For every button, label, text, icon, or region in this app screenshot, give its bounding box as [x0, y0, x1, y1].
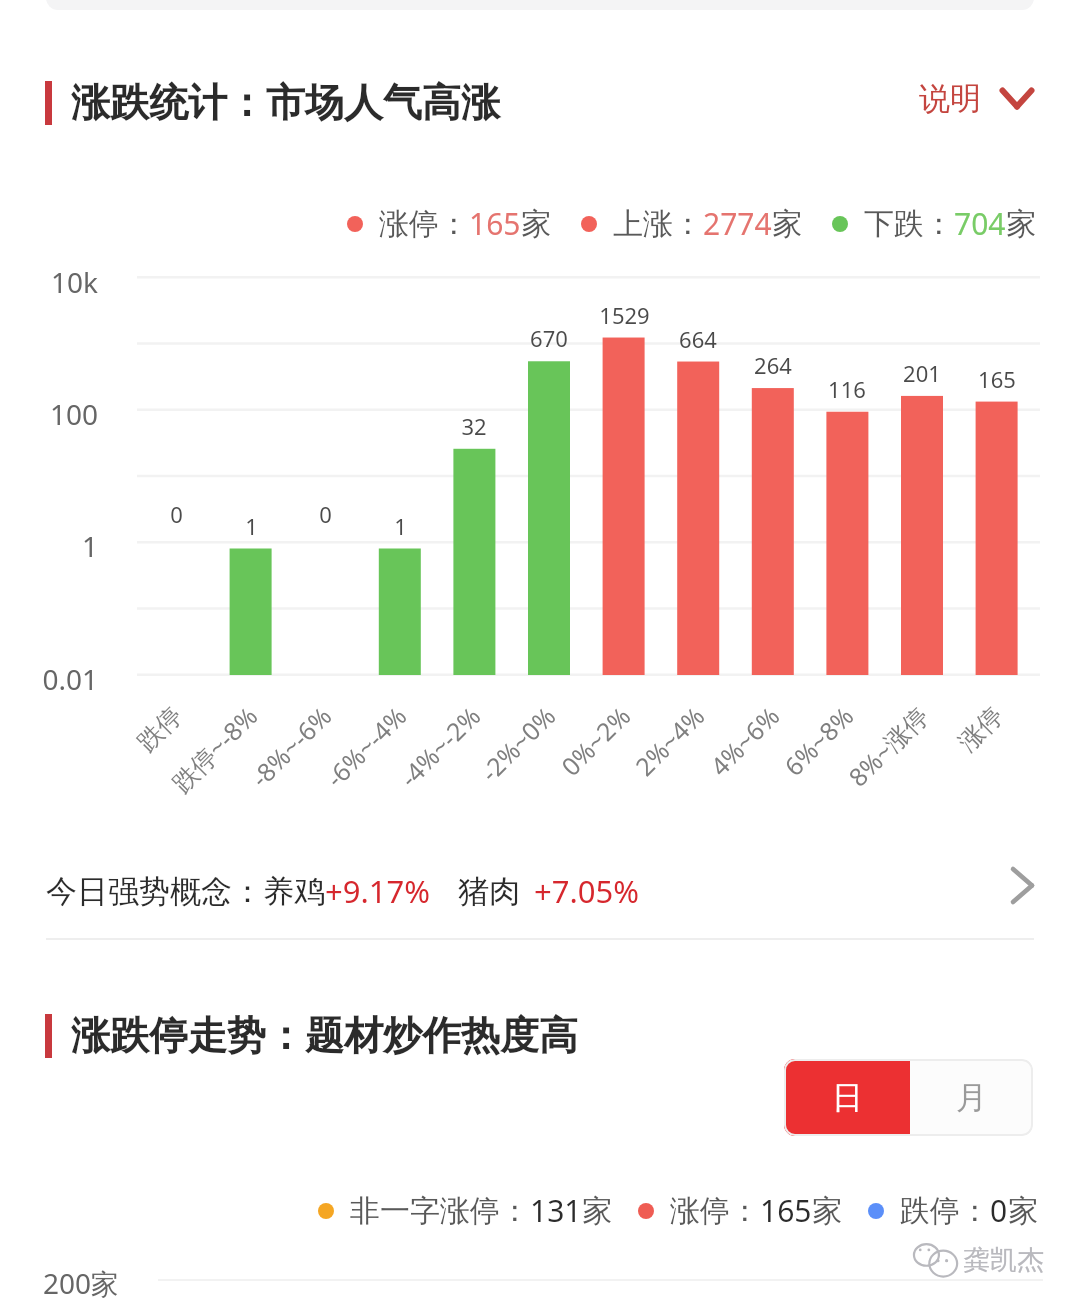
staticText: 涨停：	[670, 1192, 760, 1230]
staticText: 非一字涨停：	[350, 1192, 530, 1230]
staticText: 今日强势概念：	[46, 872, 263, 911]
staticText: 1	[245, 511, 258, 541]
button[interactable]: 日	[784, 1059, 910, 1136]
staticText: -4%~-2%	[392, 699, 487, 794]
staticText: 670	[530, 323, 568, 353]
staticText: 涨停：	[379, 205, 469, 243]
staticText: 0%~2%	[553, 699, 637, 783]
staticText: 165	[469, 203, 521, 244]
staticText: 上涨：	[613, 205, 703, 243]
staticText: 家	[812, 1192, 842, 1230]
staticText: 100	[49, 395, 98, 433]
staticText: 165	[760, 1190, 812, 1231]
button[interactable]: 上涨：	[581, 203, 802, 244]
staticText: 8%~涨停	[840, 699, 935, 794]
staticText: 涨跌停走势：题材炒作热度高	[71, 1011, 578, 1060]
staticText: 涨跌统计：市场人气高涨	[71, 78, 500, 127]
staticText: 264	[754, 350, 792, 380]
staticText: -6%~-4%	[318, 699, 413, 794]
staticText: 664	[679, 324, 717, 354]
other: WeChat	[913, 1242, 961, 1278]
staticText: 2%~4%	[627, 699, 711, 783]
staticText: 10k	[51, 263, 98, 301]
staticText: 猪肉	[458, 872, 520, 911]
staticText: 0	[319, 499, 332, 529]
staticText: 涨停	[952, 700, 1009, 758]
staticText: 4%~6%	[702, 699, 786, 783]
staticText: 日	[832, 1078, 863, 1117]
staticText: 704	[954, 203, 1006, 244]
staticText: 131	[530, 1190, 582, 1231]
staticText: 下跌：	[864, 205, 954, 243]
staticText: 1	[394, 511, 407, 541]
button[interactable]: 跌停：	[868, 1190, 1038, 1231]
staticText: 2774	[703, 203, 772, 244]
staticText: 家	[1006, 205, 1036, 243]
button[interactable]: 非一字涨停：	[318, 1190, 612, 1231]
staticText: 家	[521, 205, 551, 243]
button[interactable]: 涨停：	[347, 203, 551, 244]
button[interactable]: 下跌：	[832, 203, 1036, 244]
staticText: 1529	[599, 300, 650, 330]
staticText: -2%~0%	[472, 699, 562, 789]
staticText: 32	[461, 411, 487, 441]
staticText: 200家	[43, 1264, 120, 1302]
staticText: 家	[772, 205, 802, 243]
staticText: 月	[956, 1078, 987, 1117]
staticText: 跌停	[131, 700, 188, 758]
staticText: 养鸡	[263, 872, 325, 911]
staticText: 6%~8%	[776, 699, 860, 783]
staticText: 165	[978, 364, 1016, 394]
staticText: 说明	[919, 79, 981, 118]
staticText: 跌停：	[900, 1192, 990, 1230]
staticText: -8%~-6%	[243, 699, 338, 794]
staticText: +7.05%	[534, 870, 639, 912]
staticText: 龚凯杰	[963, 1243, 1044, 1277]
staticText: 家	[1008, 1192, 1038, 1230]
button[interactable]: 涨停：	[638, 1190, 842, 1231]
staticText: 201	[903, 358, 941, 388]
staticText: 跌停~-8%	[164, 699, 264, 799]
staticText: 0.01	[42, 660, 98, 698]
staticText: 0	[170, 499, 183, 529]
staticText: +9.17%	[325, 870, 430, 912]
button[interactable]: 月	[910, 1059, 1033, 1136]
staticText: 116	[828, 374, 866, 404]
staticText: 家	[582, 1192, 612, 1230]
staticText: 1	[81, 527, 98, 565]
staticText: 0	[990, 1190, 1008, 1231]
button[interactable]: 今日强势概念 — 查看更多	[46, 850, 1034, 932]
button[interactable]: 说明 Explanation	[906, 62, 1048, 134]
